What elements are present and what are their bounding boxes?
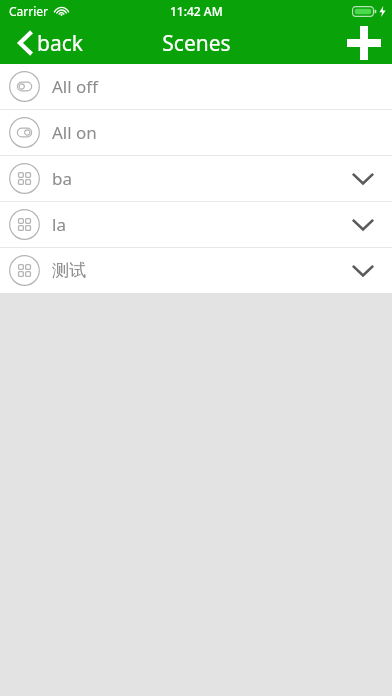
staticText: la (52, 213, 66, 236)
button[interactable]: 测试 (0, 248, 392, 293)
button[interactable]: All on (0, 110, 392, 155)
staticText: 11:42 AM (170, 3, 223, 19)
button[interactable]: Add scene (336, 22, 392, 64)
button[interactable]: back (0, 22, 95, 64)
staticText: All off (52, 75, 99, 98)
staticText: ba (52, 167, 72, 190)
button[interactable]: la (0, 202, 392, 247)
staticText: 测试 (52, 260, 86, 281)
button[interactable]: All off (0, 64, 392, 109)
staticText: Carrier (9, 3, 49, 19)
button[interactable]: ba (0, 156, 392, 201)
staticText: All on (52, 121, 97, 144)
staticText: Scenes (162, 29, 231, 58)
staticText: back (37, 29, 83, 58)
